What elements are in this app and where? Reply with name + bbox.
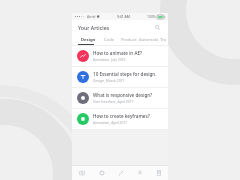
button[interactable]: How to animate in AE? [72,46,168,66]
button[interactable]: What is responsive design? [72,88,168,108]
staticText: Airtel [87,14,96,19]
button[interactable]: Settings [92,166,111,180]
staticText: User Interface, April 2017 [93,99,134,104]
button[interactable]: Design [78,34,99,45]
button[interactable]: 10 Essential steps for design. [72,67,168,87]
staticText: How to animate in AE? [93,50,143,56]
staticText: Design, March 2017 [93,78,125,83]
staticText: 9:41 AM [117,14,130,19]
staticText: Animation, July 2015 [93,57,126,62]
button[interactable]: Code [99,34,119,45]
staticText: Automobile [139,37,159,43]
staticText: Product [121,37,137,43]
staticText: Code [104,37,115,43]
staticText: 100% [147,14,156,19]
button[interactable]: Product [119,34,139,45]
button[interactable]: Photos [72,166,92,180]
button[interactable]: Profile [130,166,149,180]
staticText: Tra [160,37,167,43]
staticText: How to create keyframes? [93,113,150,119]
staticText: Animation, April 2017 [93,120,128,125]
button[interactable]: Saved [149,166,168,180]
staticText: What is responsive design? [93,92,153,98]
button[interactable]: Automobile [139,34,159,45]
staticText: Design [81,37,96,43]
button[interactable]: How to create keyframes? [72,109,168,129]
staticText: Your Articles [78,24,152,31]
button[interactable]: Compose [111,166,130,180]
button[interactable]: Search [152,22,162,32]
button[interactable]: Tra [159,34,168,45]
staticText: 10 Essential steps for design. [93,71,157,77]
